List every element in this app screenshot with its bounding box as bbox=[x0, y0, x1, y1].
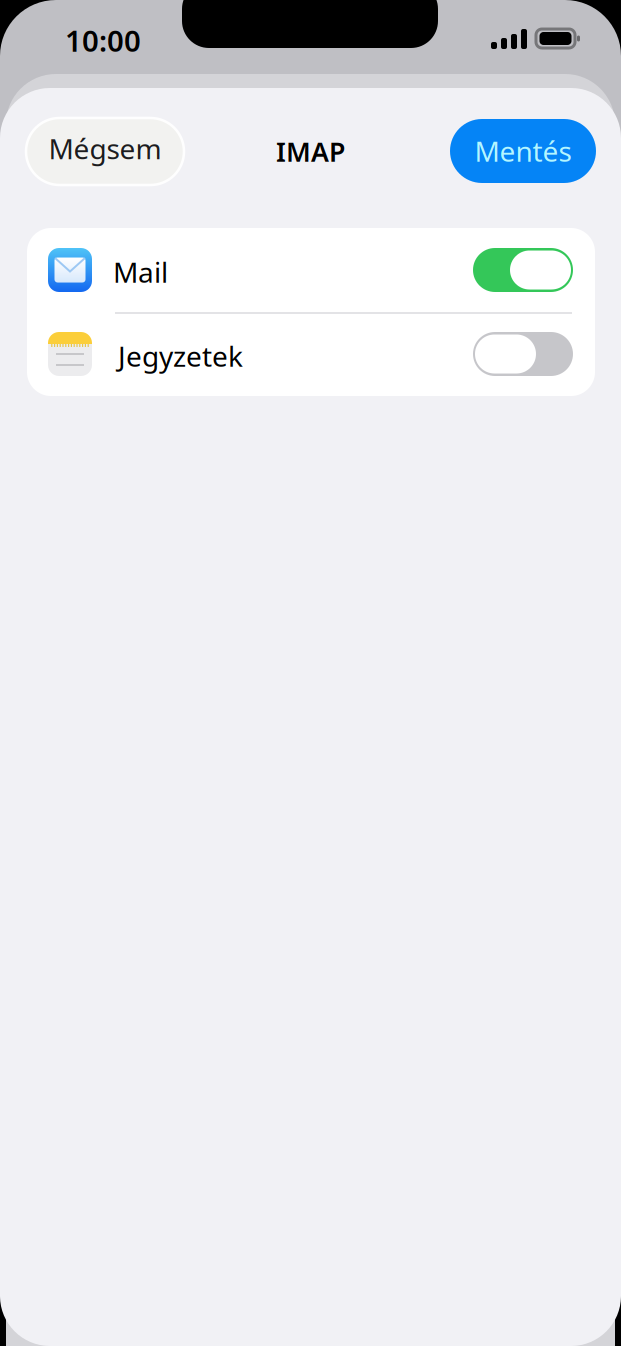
button[interactable]: Jegyzetek bbox=[27, 312, 595, 396]
staticText: Jegyzetek bbox=[118, 337, 243, 375]
button[interactable]: Mentés bbox=[450, 119, 596, 183]
staticText: Mail bbox=[113, 253, 168, 291]
staticText: IMAP bbox=[276, 134, 345, 169]
staticText: 10:00 bbox=[65, 21, 141, 60]
button[interactable]: Mail bbox=[27, 228, 595, 312]
button[interactable]: Mégsem bbox=[26, 118, 184, 185]
staticText: Mentés bbox=[474, 132, 571, 170]
staticText: Mégsem bbox=[48, 130, 161, 167]
